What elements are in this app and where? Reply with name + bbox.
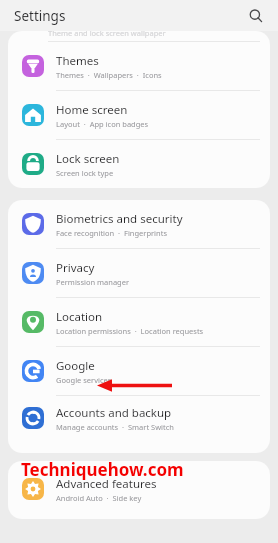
staticText: Settings [14,7,66,25]
button[interactable]: Location [8,298,270,346]
staticText: Layout · App icon badges [56,119,149,129]
staticText: Permission manager [56,277,130,287]
staticText: Location [56,309,103,325]
button[interactable]: Google [8,347,270,395]
staticText: Privacy [56,260,95,276]
staticText: Home screen [56,102,128,118]
staticText: Themes · Wallpapers · Icons [56,70,162,80]
staticText: Screen lock type [56,168,114,178]
staticText: Accounts and backup [56,405,172,421]
staticText: Lock screen [56,151,120,167]
button[interactable]: Theme and lock screen wallpaper [8,31,270,42]
button[interactable]: Search [244,4,268,28]
button[interactable]: Home screen [8,91,270,139]
staticText: Theme and lock screen wallpaper [48,31,166,38]
button[interactable]: Lock screen [8,140,270,188]
button[interactable]: Advanced features [8,465,270,513]
staticText: Location permissions · Location requests [56,326,204,336]
button[interactable]: Biometrics and security [8,200,270,248]
staticText: Face recognition · Fingerprints [56,228,167,238]
staticText: Google [56,358,95,374]
button[interactable]: Accounts and backup [8,396,270,440]
staticText: Biometrics and security [56,211,183,227]
staticText: Manage accounts · Smart Switch [56,422,174,432]
staticText: Techniquehow.com [21,458,184,481]
staticText: Themes [56,53,99,69]
button[interactable]: Privacy [8,249,270,297]
button[interactable]: Themes [8,42,270,90]
staticText: Advanced features [56,476,157,492]
staticText: Android Auto · Side key [56,493,142,503]
staticText: Google services [56,375,112,385]
